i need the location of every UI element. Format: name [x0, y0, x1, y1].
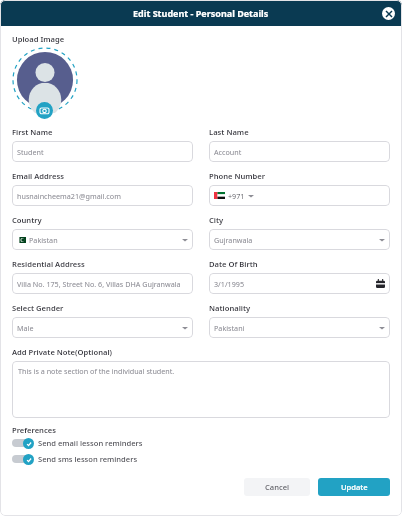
button[interactable]: Student: [12, 141, 193, 162]
staticText: Country: [12, 215, 42, 225]
staticText: husnaincheema21@gmail.com: [17, 191, 188, 201]
button[interactable]: Account: [209, 141, 390, 162]
staticText: Upload Image: [12, 34, 65, 44]
staticText: First Name: [12, 127, 53, 137]
staticText: Phone Number: [209, 171, 266, 181]
button[interactable]: Close: [382, 7, 395, 20]
staticText: Send email lesson reminders: [38, 438, 143, 448]
other: Pick date: [376, 279, 385, 288]
button[interactable]: Cancel: [244, 478, 310, 496]
staticText: Villa No. 175, Street No. 6, Villas DHA …: [17, 279, 188, 289]
staticText: Update: [341, 482, 368, 492]
button[interactable]: 3/1/1995: [209, 273, 390, 294]
staticText: This is a note section of the individual…: [18, 366, 175, 376]
button[interactable]: Pakistani: [209, 317, 390, 338]
staticText: Edit Student - Personal Details: [133, 7, 269, 19]
button[interactable]: Male: [12, 317, 193, 338]
button[interactable]: husnaincheema21@gmail.com: [12, 185, 193, 206]
button[interactable]: Pakistan: [12, 229, 193, 250]
button[interactable]: Upload image: [12, 47, 82, 119]
staticText: Send sms lesson reminders: [38, 454, 138, 464]
button[interactable]: +971: [209, 185, 390, 206]
staticText: Nationality: [209, 303, 251, 313]
staticText: +971: [228, 191, 245, 201]
staticText: 3/1/1995: [214, 279, 376, 289]
staticText: Email Address: [12, 171, 64, 181]
button[interactable]: Villa No. 175, Street No. 6, Villas DHA …: [12, 273, 193, 294]
staticText: Preferences: [12, 425, 56, 435]
staticText: Pakistan: [29, 235, 182, 245]
staticText: City: [209, 215, 224, 225]
button[interactable]: Update: [318, 478, 390, 496]
staticText: Male: [17, 323, 182, 333]
button[interactable]: Gujranwala: [209, 229, 390, 250]
button[interactable]: Send email lesson reminders: [12, 437, 143, 449]
staticText: Account: [214, 147, 385, 157]
staticText: Pakistani: [214, 323, 379, 333]
staticText: Gujranwala: [214, 235, 379, 245]
staticText: Residential Address: [12, 259, 85, 269]
staticText: Date Of Birth: [209, 259, 258, 269]
staticText: Select Gender: [12, 303, 64, 313]
button[interactable]: Send sms lesson reminders: [12, 453, 138, 465]
staticText: Cancel: [265, 482, 290, 492]
staticText: Last Name: [209, 127, 249, 137]
staticText: Add Private Note(Optional): [12, 347, 113, 357]
staticText: Student: [17, 147, 188, 157]
button[interactable]: This is a note section of the individual…: [12, 361, 390, 418]
